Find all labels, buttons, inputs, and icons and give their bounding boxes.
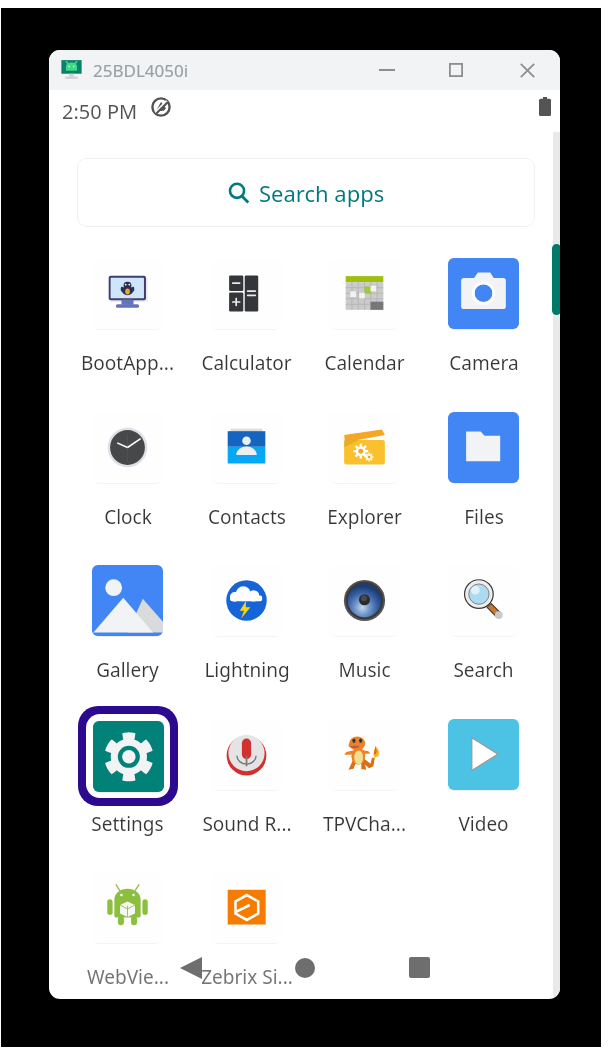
staticText: Music [338, 657, 391, 683]
button[interactable]: TPVCha... [305, 703, 424, 835]
button[interactable]: Music [305, 549, 424, 681]
button[interactable]: Search [424, 549, 543, 681]
button[interactable]: Settings [68, 703, 187, 835]
button[interactable]: Explorer [305, 396, 424, 528]
button[interactable]: Video [424, 703, 543, 835]
staticText: BootApp... [81, 350, 174, 376]
button[interactable]: Sound R... [187, 703, 306, 835]
button[interactable]: Back [180, 957, 202, 979]
button[interactable]: WebVie... [68, 856, 187, 988]
button[interactable]: Lightning [187, 549, 306, 681]
staticText: Camera [449, 350, 519, 376]
staticText: Zebrix Si... [201, 964, 293, 990]
staticText: Sound R... [202, 811, 292, 837]
button[interactable]: Files [424, 396, 543, 528]
button[interactable]: Maximize [433, 50, 479, 90]
button[interactable]: Zebrix Si... [187, 856, 306, 988]
button[interactable]: Calendar [305, 242, 424, 374]
button[interactable]: Search apps [77, 158, 535, 227]
button[interactable]: Clock [68, 396, 187, 528]
button[interactable]: Calculator [187, 242, 306, 374]
staticText: Contacts [208, 504, 286, 530]
staticText: Video [458, 811, 509, 837]
staticText: Search apps [259, 178, 385, 208]
button[interactable]: Gallery [68, 549, 187, 681]
staticText: 25BDL4050i [93, 59, 189, 82]
staticText: Search [453, 657, 514, 683]
button[interactable]: Home [295, 958, 315, 978]
staticText: Explorer [327, 504, 402, 530]
staticText: 2:50 PM [62, 98, 138, 125]
button[interactable]: Minimize [364, 50, 410, 90]
staticText: Gallery [96, 657, 159, 683]
button[interactable]: Close [504, 50, 550, 90]
staticText: Calculator [201, 350, 292, 376]
staticText: Clock [104, 504, 152, 530]
staticText: Files [464, 504, 504, 530]
button[interactable]: BootApp... [68, 242, 187, 374]
staticText: Lightning [204, 657, 290, 683]
staticText: WebVie... [87, 964, 169, 990]
staticText: Settings [91, 811, 164, 837]
staticText: TPVCha... [323, 811, 406, 837]
staticText: Calendar [324, 350, 405, 376]
button[interactable]: Contacts [187, 396, 306, 528]
button[interactable]: Recent apps [409, 957, 430, 978]
button[interactable]: Camera [424, 242, 543, 374]
